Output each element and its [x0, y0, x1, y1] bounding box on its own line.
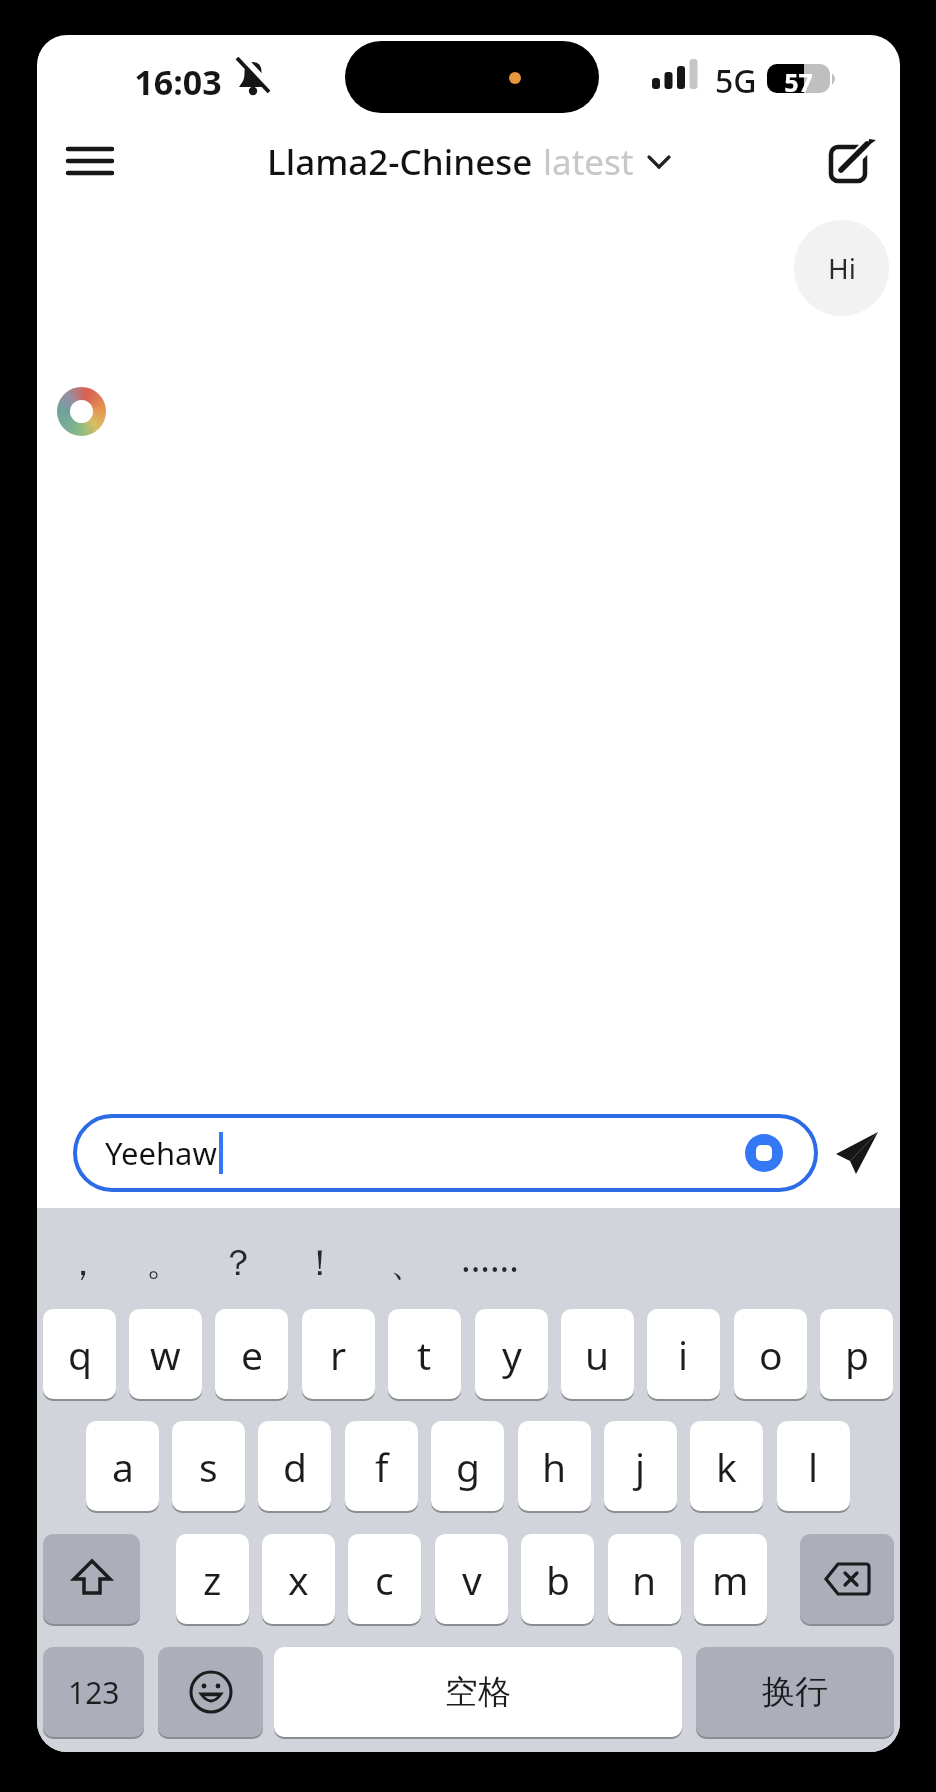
staticText: b: [546, 1553, 570, 1606]
staticText: o: [759, 1328, 783, 1381]
staticText: Llama2-Chinese: [267, 138, 533, 184]
staticText: y: [502, 1328, 522, 1381]
button[interactable]: k: [690, 1421, 763, 1511]
button[interactable]: j: [604, 1421, 677, 1511]
staticText: s: [199, 1440, 218, 1493]
button[interactable]: l: [777, 1421, 850, 1511]
button[interactable]: [800, 1534, 894, 1624]
staticText: u: [585, 1328, 610, 1381]
staticText: ！: [302, 1240, 338, 1285]
staticText: a: [112, 1440, 134, 1493]
staticText: x: [288, 1553, 309, 1606]
button[interactable]: w: [129, 1309, 202, 1399]
button[interactable]: 空格: [274, 1647, 682, 1737]
button[interactable]: [817, 127, 885, 195]
staticText: w: [150, 1328, 181, 1381]
button[interactable]: c: [348, 1534, 421, 1624]
staticText: 空格: [445, 1671, 511, 1713]
staticText: l: [808, 1440, 819, 1493]
staticText: 123: [68, 1672, 120, 1713]
staticText: ？: [220, 1240, 256, 1285]
staticText: d: [283, 1440, 307, 1493]
staticText: h: [542, 1440, 567, 1493]
staticText: ，: [65, 1240, 101, 1285]
staticText: j: [635, 1440, 646, 1493]
button[interactable]: b: [521, 1534, 594, 1624]
staticText: k: [716, 1440, 737, 1493]
button[interactable]: Llama2-Chinese: [267, 138, 670, 184]
staticText: f: [375, 1440, 389, 1493]
staticText: t: [417, 1328, 432, 1381]
button[interactable]: m: [694, 1534, 767, 1624]
button[interactable]: [158, 1647, 263, 1737]
staticText: latest: [543, 138, 634, 184]
staticText: 16:03: [113, 59, 243, 105]
button[interactable]: h: [518, 1421, 591, 1511]
button[interactable]: s: [172, 1421, 245, 1511]
staticText: e: [241, 1328, 263, 1381]
button[interactable]: t: [388, 1309, 461, 1399]
button[interactable]: p: [820, 1309, 893, 1399]
staticText: i: [678, 1328, 689, 1381]
button[interactable]: v: [435, 1534, 508, 1624]
staticText: Hi: [828, 249, 856, 287]
button[interactable]: x: [262, 1534, 335, 1624]
staticText: r: [330, 1328, 347, 1381]
button[interactable]: z: [176, 1534, 249, 1624]
button[interactable]: [43, 1534, 140, 1624]
button[interactable]: e: [215, 1309, 288, 1399]
staticText: 换行: [762, 1671, 828, 1713]
button[interactable]: [55, 133, 125, 189]
button[interactable]: i: [647, 1309, 720, 1399]
button[interactable]: r: [302, 1309, 375, 1399]
button[interactable]: d: [258, 1421, 331, 1511]
button[interactable]: u: [561, 1309, 634, 1399]
staticText: v: [462, 1553, 482, 1606]
button[interactable]: g: [431, 1421, 504, 1511]
staticText: p: [845, 1328, 869, 1381]
staticText: m: [712, 1553, 749, 1606]
button[interactable]: 123: [43, 1647, 144, 1737]
staticText: g: [456, 1440, 480, 1493]
button[interactable]: n: [608, 1534, 681, 1624]
staticText: Yeehaw: [105, 1132, 217, 1174]
button[interactable]: Yeehaw: [73, 1114, 818, 1192]
staticText: 、: [390, 1240, 426, 1285]
button[interactable]: o: [734, 1309, 807, 1399]
button[interactable]: a: [86, 1421, 159, 1511]
staticText: c: [375, 1553, 394, 1606]
staticText: 5G: [715, 59, 757, 103]
staticText: 。: [146, 1240, 182, 1285]
staticText: q: [68, 1328, 92, 1381]
staticText: z: [203, 1553, 222, 1606]
staticText: ......: [461, 1234, 519, 1283]
button[interactable]: f: [345, 1421, 418, 1511]
staticText: n: [632, 1553, 657, 1606]
button[interactable]: [827, 1121, 889, 1183]
button[interactable]: q: [43, 1309, 116, 1399]
button[interactable]: y: [475, 1309, 548, 1399]
staticText: 57: [767, 65, 830, 99]
button[interactable]: 换行: [696, 1647, 894, 1737]
button[interactable]: [745, 1134, 783, 1172]
